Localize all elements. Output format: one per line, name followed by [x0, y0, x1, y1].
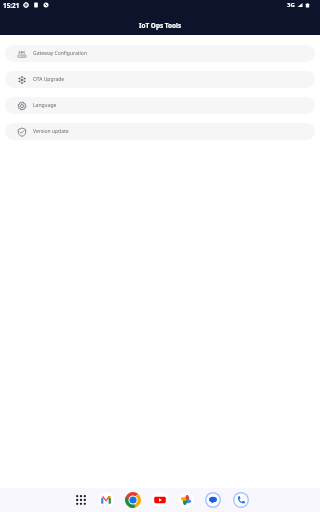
button[interactable]: OTA Upgrade [5, 71, 315, 88]
staticText: Language [33, 102, 57, 109]
button[interactable]: Phone [228, 488, 254, 512]
staticText: 3G [287, 1, 295, 9]
button[interactable]: YouTube [147, 488, 173, 512]
staticText: OTA Upgrade [33, 76, 65, 83]
staticText: 15:21 [3, 1, 20, 10]
button[interactable]: Gateway Configuration [5, 45, 315, 62]
staticText: IoT Ops Tools [139, 21, 182, 30]
button[interactable]: Messages [200, 488, 226, 512]
button[interactable]: Gmail [93, 488, 119, 512]
button[interactable]: Photos [173, 488, 199, 512]
button[interactable]: All apps [68, 488, 94, 512]
staticText: Gateway Configuration [33, 50, 87, 57]
button[interactable]: Chrome [120, 488, 146, 512]
button[interactable]: Version update [5, 123, 315, 140]
button[interactable]: Language [5, 97, 315, 114]
staticText: Version update [33, 128, 69, 135]
